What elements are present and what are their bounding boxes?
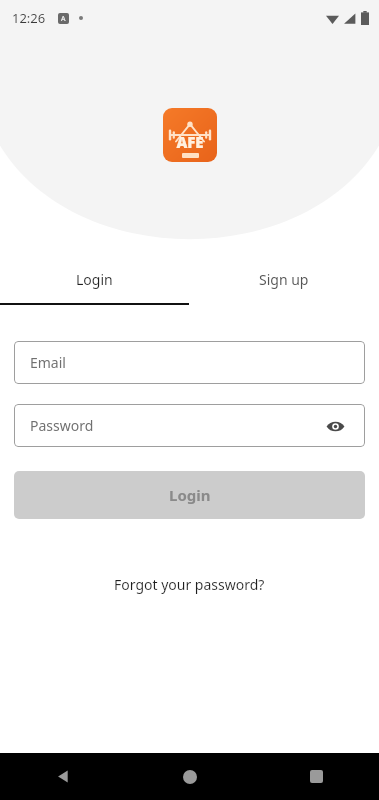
staticText: Forgot your password? — [114, 575, 265, 594]
button[interactable]: Home — [127, 753, 253, 800]
staticText: 12:26 — [12, 9, 46, 27]
button[interactable]: Email — [14, 341, 365, 384]
button[interactable]: Sign up — [189, 262, 379, 297]
button[interactable]: Password — [14, 404, 365, 447]
staticText: Email — [30, 353, 66, 372]
button[interactable]: Login — [0, 262, 189, 297]
staticText: A — [61, 14, 66, 24]
button[interactable]: Forgot your password? — [14, 569, 365, 600]
button[interactable]: Recent apps — [253, 753, 379, 800]
staticText: Sign up — [259, 270, 309, 289]
button[interactable]: Login — [14, 471, 365, 519]
staticText: AFE — [176, 132, 204, 152]
button[interactable]: Show password — [321, 412, 349, 440]
staticText: Login — [169, 485, 211, 505]
other: AFE logo — [163, 108, 217, 162]
staticText: Password — [30, 416, 94, 435]
button[interactable]: Back — [0, 753, 127, 800]
staticText: Login — [76, 270, 113, 289]
